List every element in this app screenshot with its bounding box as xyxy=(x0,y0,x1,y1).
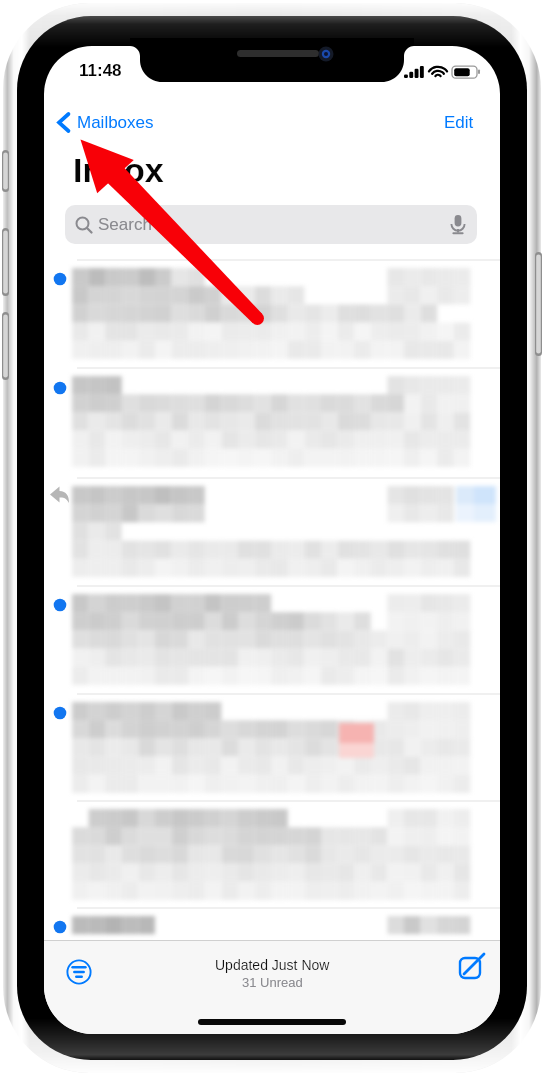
button[interactable] xyxy=(44,368,500,476)
staticText: Inbox xyxy=(73,151,164,189)
staticText: Updated Just Now xyxy=(215,957,330,973)
button[interactable] xyxy=(44,260,500,368)
button[interactable]: Filter xyxy=(57,950,101,994)
button[interactable] xyxy=(44,476,500,584)
button[interactable]: Mailboxes xyxy=(44,105,164,139)
staticText: Edit xyxy=(444,113,474,132)
staticText: Mailboxes xyxy=(77,113,154,132)
staticText: Search xyxy=(98,215,152,234)
button[interactable]: Search xyxy=(65,205,477,244)
staticText: 11:48 xyxy=(79,61,122,80)
staticText: 31 Unread xyxy=(242,975,303,990)
button[interactable] xyxy=(44,692,500,800)
button[interactable] xyxy=(44,908,500,940)
button[interactable]: Edit xyxy=(432,105,486,139)
button[interactable]: Compose xyxy=(448,946,492,990)
button[interactable] xyxy=(44,800,500,908)
button[interactable] xyxy=(44,584,500,692)
